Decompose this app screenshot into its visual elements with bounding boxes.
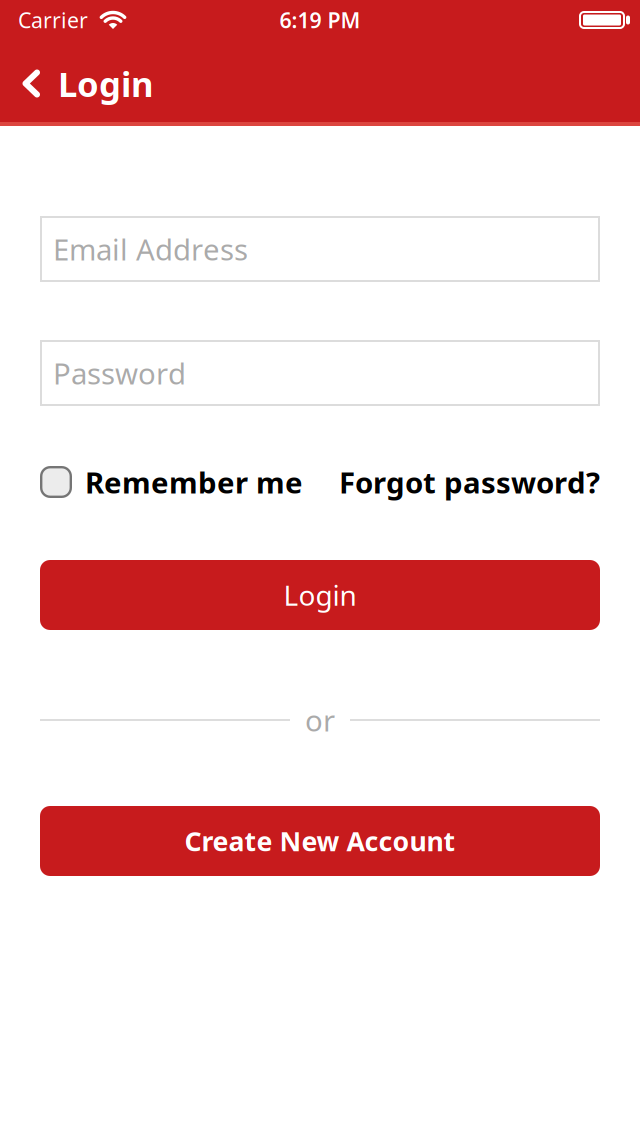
button[interactable]: Create New Account xyxy=(40,806,600,876)
button[interactable]: Password xyxy=(40,340,600,406)
staticText: Forgot password? xyxy=(339,462,600,501)
staticText: or xyxy=(305,700,335,739)
button[interactable]: Remember me xyxy=(40,462,303,501)
staticText: 6:19 PM xyxy=(279,6,360,34)
button[interactable]: Back xyxy=(22,69,40,97)
staticText: Create New Account xyxy=(184,823,455,859)
staticText: Password xyxy=(53,353,186,392)
staticText: Carrier xyxy=(18,6,88,34)
button[interactable]: Forgot password? xyxy=(339,462,600,501)
button[interactable]: Login xyxy=(40,560,600,630)
button[interactable]: Email Address xyxy=(40,216,600,282)
staticText: Login xyxy=(283,576,356,614)
staticText: Email Address xyxy=(53,229,248,268)
staticText: Remember me xyxy=(85,462,303,501)
staticText: Login xyxy=(58,60,154,106)
